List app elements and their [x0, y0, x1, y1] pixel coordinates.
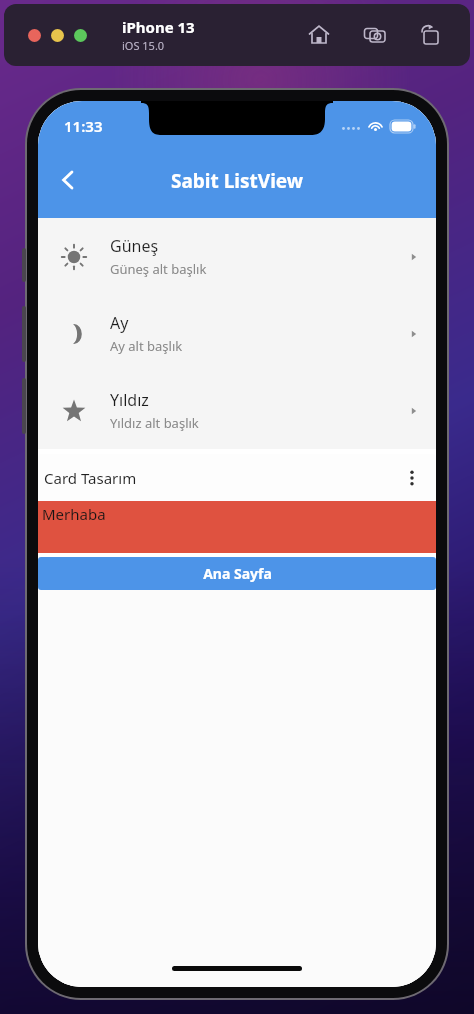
staticText: Güneş [110, 235, 159, 257]
button[interactable]: Home [302, 18, 336, 52]
staticText: Merhaba [42, 504, 106, 524]
staticText: Ay [110, 312, 129, 334]
button[interactable]: More options [396, 462, 428, 494]
button[interactable]: Window control [28, 29, 41, 42]
staticText: Ana Sayfa [203, 564, 272, 583]
staticText: Sabit ListView [171, 168, 304, 194]
button[interactable]: Window control [74, 29, 87, 42]
staticText: Yıldız [110, 389, 149, 411]
button[interactable]: Güneş [38, 218, 436, 295]
staticText: Yıldız alt başlık [110, 414, 199, 432]
staticText: Card Tasarım [44, 468, 137, 488]
button[interactable]: Ana Sayfa [38, 557, 436, 590]
staticText: Ay alt başlık [110, 337, 183, 355]
staticText: iPhone 13 [122, 17, 195, 37]
button[interactable]: Yıldız [38, 372, 436, 449]
button[interactable]: Card Tasarım [38, 454, 436, 501]
staticText: 11:33 [64, 116, 103, 136]
staticText: Güneş alt başlık [110, 260, 207, 278]
button[interactable]: Back [46, 158, 90, 202]
staticText: iOS 15.0 [122, 38, 165, 53]
button[interactable]: Window control [51, 29, 64, 42]
button[interactable]: Screenshot [358, 18, 392, 52]
button[interactable]: Rotate [414, 18, 448, 52]
button[interactable]: Ay [38, 295, 436, 372]
button[interactable]: Merhaba [38, 501, 436, 553]
